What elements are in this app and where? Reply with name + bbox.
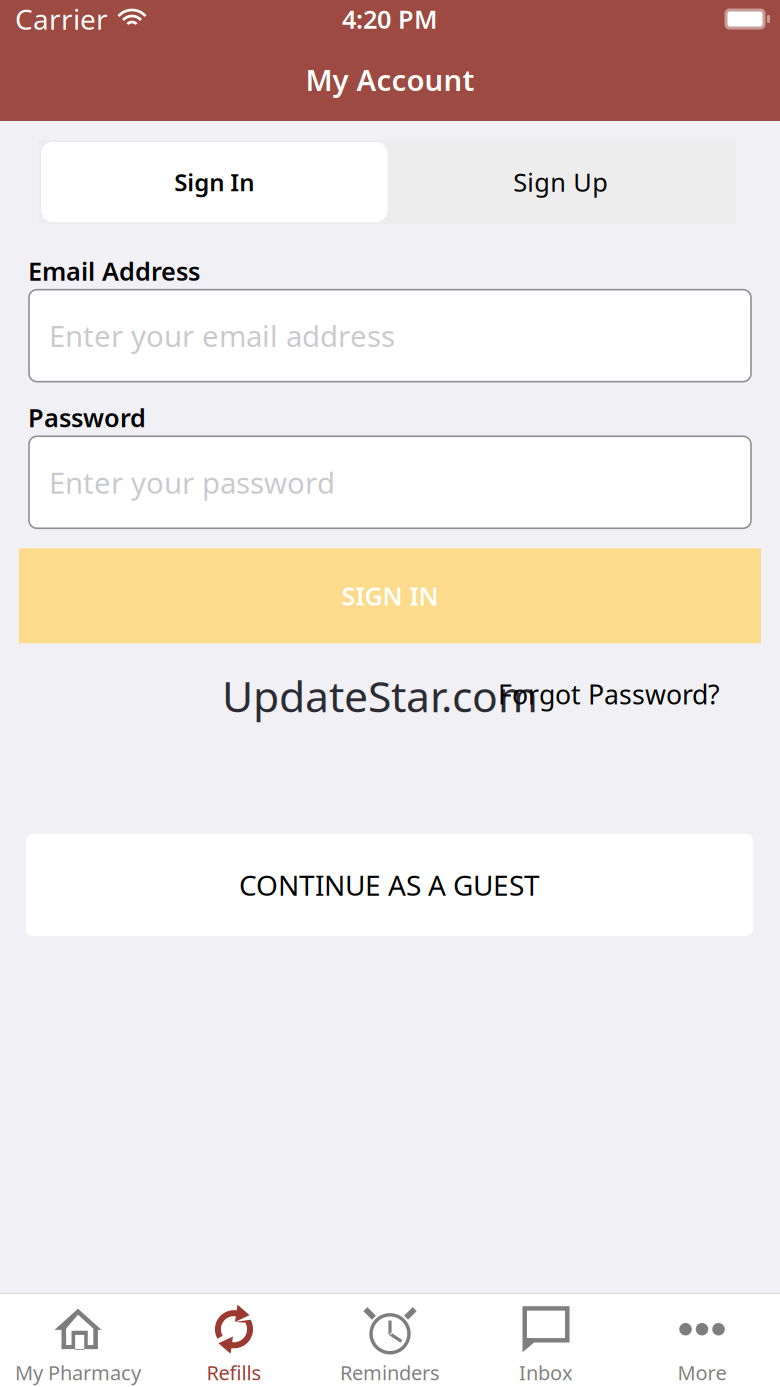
staticText: CONTINUE AS A GUEST [239,866,540,904]
staticText: My Pharmacy [15,1359,141,1386]
button[interactable]: My Pharmacy [0,1289,156,1387]
staticText: Forgot Password? [498,676,720,712]
staticText: SIGN IN [341,579,438,613]
staticText: Sign In [174,166,254,198]
staticText: Email Address [28,254,200,288]
button[interactable]: Enter your email address [29,290,751,382]
button[interactable]: SIGN IN [19,548,761,643]
button[interactable]: Inbox [468,1289,624,1387]
staticText: Inbox [519,1359,573,1386]
button[interactable]: Forgot Password? [0,649,780,718]
staticText: Refills [206,1359,261,1386]
staticText: My Account [305,60,474,99]
button[interactable]: Enter your password [29,436,751,528]
button[interactable]: Reminders [312,1289,468,1387]
button[interactable]: CONTINUE AS A GUEST [26,834,753,936]
button[interactable]: Refills [156,1289,312,1387]
staticText: UpdateStar.com [222,667,538,724]
staticText: More [677,1359,726,1386]
staticText: Sign Up [513,165,608,199]
staticText: Password [28,401,146,434]
staticText: Reminders [340,1359,440,1386]
staticText: 4:20 PM [342,2,438,36]
button[interactable]: Sign In [41,142,387,222]
staticText: Enter your email address [49,316,395,355]
button[interactable]: Sign Up [387,142,734,222]
staticText: Carrier [15,0,108,38]
staticText: Enter your password [49,463,335,502]
button[interactable]: More [624,1289,780,1387]
